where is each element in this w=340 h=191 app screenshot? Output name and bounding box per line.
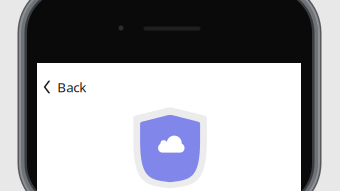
button[interactable]: Back [38, 71, 96, 103]
staticText: Back [57, 78, 86, 96]
